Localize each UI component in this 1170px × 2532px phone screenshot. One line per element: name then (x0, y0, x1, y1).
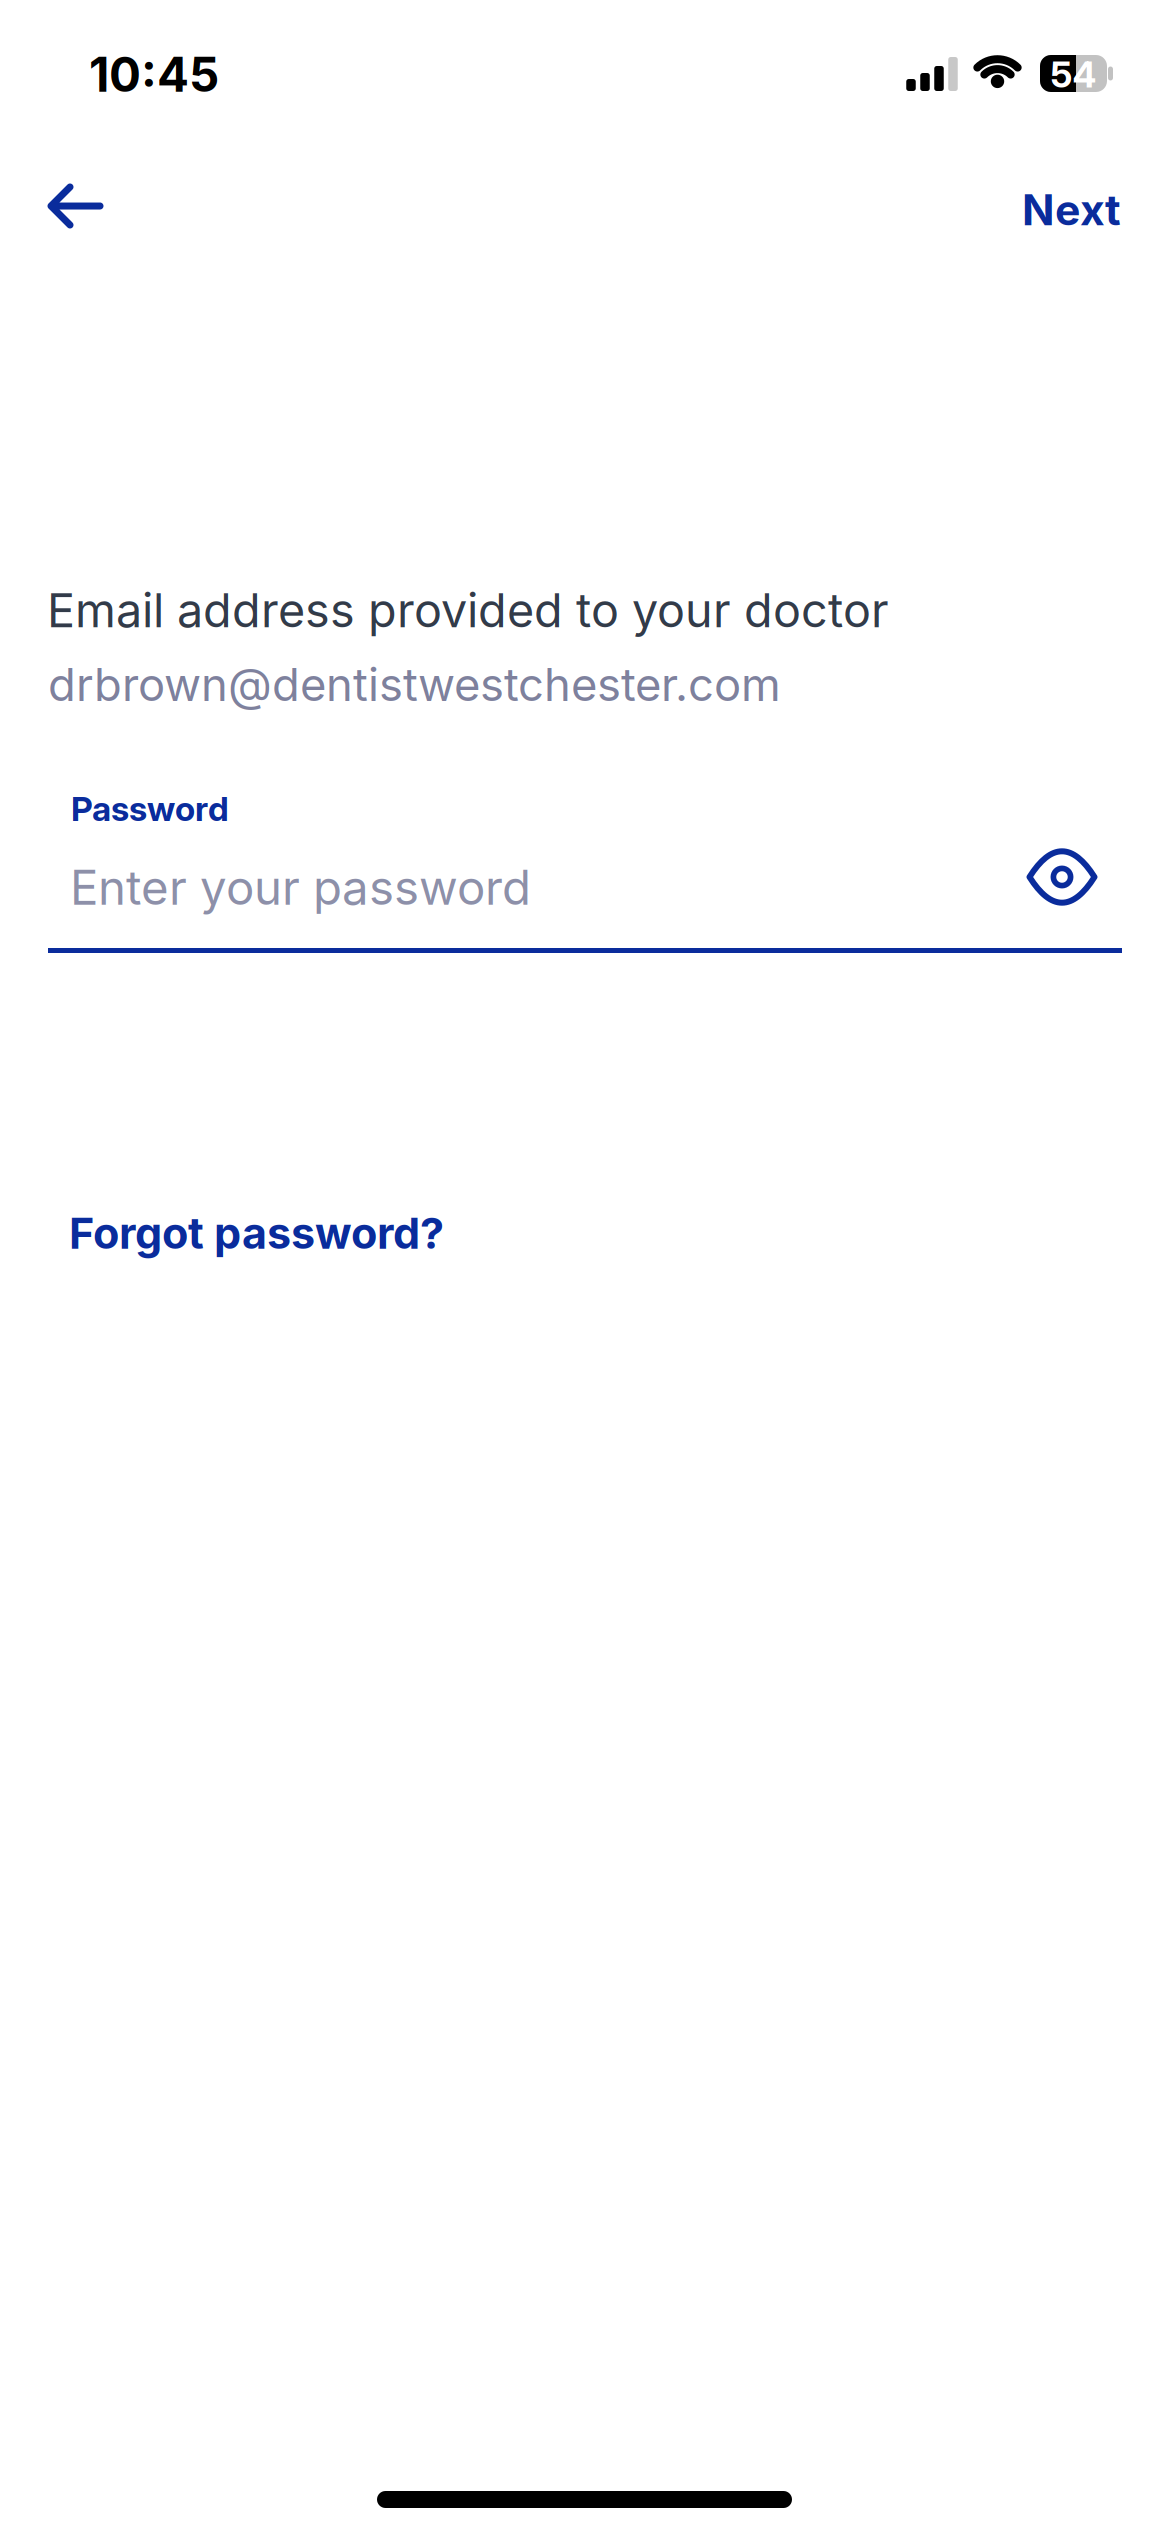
staticText: drbrown@dentistwestchester.com (48, 657, 781, 712)
staticText: Forgot password? (69, 1207, 444, 1259)
staticText: 54 (1050, 53, 1096, 96)
staticText: Password (71, 788, 229, 829)
button[interactable]: Show password (1024, 846, 1100, 908)
button[interactable]: Forgot password? (69, 1207, 444, 1259)
staticText: Email address provided to your doctor (47, 582, 889, 638)
button[interactable]: Next (1022, 184, 1121, 236)
staticText: 10:45 (89, 46, 219, 103)
staticText: Next (1022, 184, 1121, 236)
button[interactable]: Back (47, 183, 104, 229)
staticText: Enter your password (70, 859, 531, 916)
